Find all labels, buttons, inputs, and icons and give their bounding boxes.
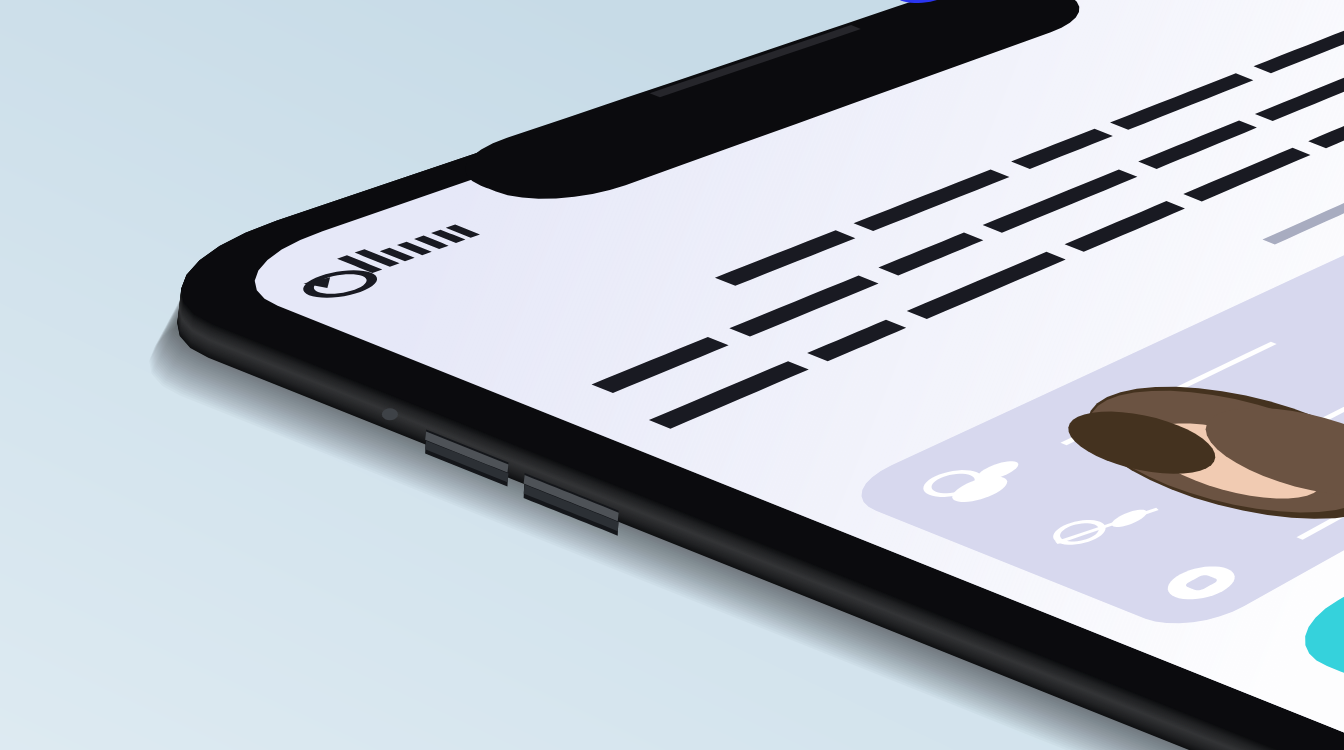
button[interactable]: Phone mockup — [0, 0, 1344, 750]
